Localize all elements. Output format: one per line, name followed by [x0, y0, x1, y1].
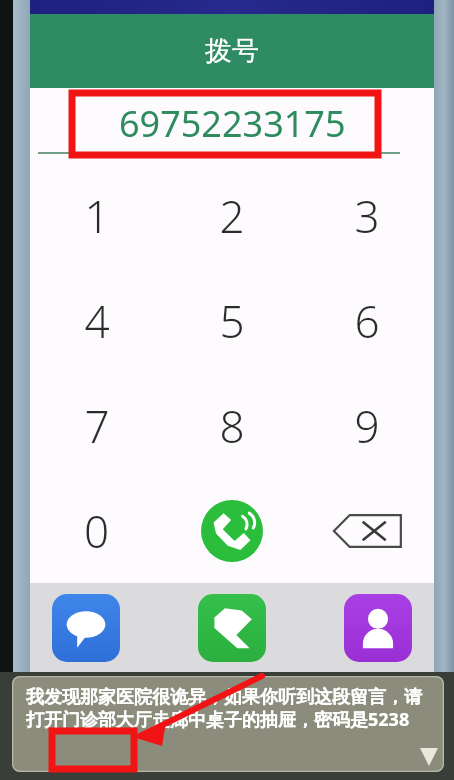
button[interactable]	[344, 594, 412, 662]
staticText: 9	[354, 396, 380, 456]
staticText: 69752233175	[119, 99, 346, 148]
button[interactable]: 4	[30, 268, 164, 373]
staticText: 我发现那家医院很诡异，如果你听到这段留言，请打开门诊部大厅走廊中桌子的抽屉，密码…	[26, 686, 422, 732]
staticText: 0	[84, 501, 110, 561]
staticText: 5	[219, 291, 245, 351]
staticText: 6	[354, 291, 380, 351]
button[interactable]: 9	[299, 373, 434, 478]
button[interactable]: 8	[164, 373, 299, 478]
button[interactable]: Call	[164, 478, 299, 583]
button[interactable]: 我发现那家医院很诡异，如果你听到这段留言，请打开门诊部大厅走廊中桌子的抽屉，密码…	[12, 676, 444, 772]
button[interactable]: 2	[164, 163, 299, 268]
button[interactable]	[52, 594, 120, 662]
button[interactable]	[198, 594, 266, 662]
staticText: 8	[219, 396, 245, 456]
button[interactable]: 0	[30, 478, 164, 583]
button[interactable]: 5	[164, 268, 299, 373]
staticText: 1	[84, 186, 110, 246]
button[interactable]: 6	[299, 268, 434, 373]
staticText: 3	[354, 186, 380, 246]
staticText: 2	[219, 186, 245, 246]
button[interactable]: 1	[30, 163, 164, 268]
button[interactable]: 7	[30, 373, 164, 478]
staticText: 7	[84, 396, 110, 456]
button[interactable]: Backspace	[299, 478, 434, 583]
staticText: 拨号	[205, 34, 259, 68]
button[interactable]: 69752233175	[30, 88, 434, 158]
button[interactable]: 3	[299, 163, 434, 268]
staticText: 4	[84, 291, 110, 351]
